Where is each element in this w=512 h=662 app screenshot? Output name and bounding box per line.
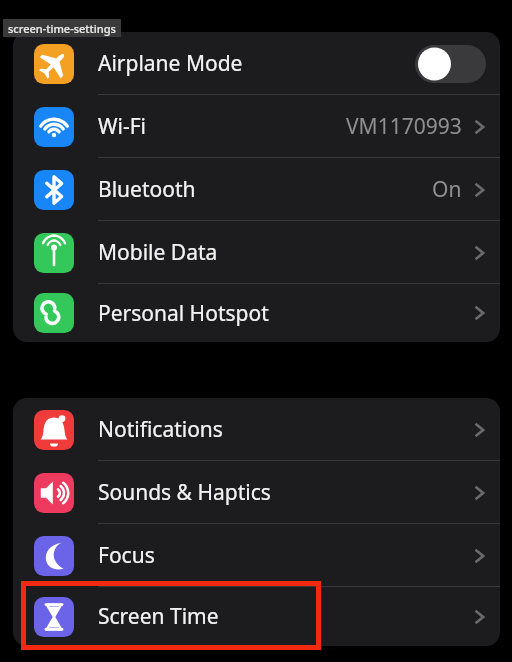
staticText: Screen Time	[98, 602, 219, 631]
staticText: Sounds & Haptics	[98, 478, 271, 507]
staticText: screen-time-settings	[8, 21, 116, 36]
staticText: Focus	[98, 541, 155, 570]
button[interactable]: Airplane Mode	[13, 32, 500, 95]
button[interactable]: Mobile Data	[13, 221, 500, 284]
button[interactable]: Notifications	[13, 398, 500, 461]
button[interactable]: Bluetooth	[13, 158, 500, 221]
staticText: VM1170993	[346, 112, 462, 141]
staticText: Notifications	[98, 415, 223, 444]
button[interactable]: Focus	[13, 524, 500, 587]
staticText: Wi-Fi	[98, 112, 147, 141]
button[interactable]: Wi-Fi	[13, 95, 500, 158]
staticText: Mobile Data	[98, 238, 218, 267]
button[interactable]: Personal Hotspot	[13, 284, 500, 342]
button[interactable]: Screen Time	[13, 587, 500, 646]
staticText: Personal Hotspot	[98, 299, 269, 328]
staticText: Airplane Mode	[98, 49, 243, 78]
staticText: Bluetooth	[98, 175, 196, 204]
button[interactable]: Sounds & Haptics	[13, 461, 500, 524]
staticText: On	[432, 175, 462, 204]
button[interactable]: Airplane Mode toggle	[415, 45, 486, 83]
